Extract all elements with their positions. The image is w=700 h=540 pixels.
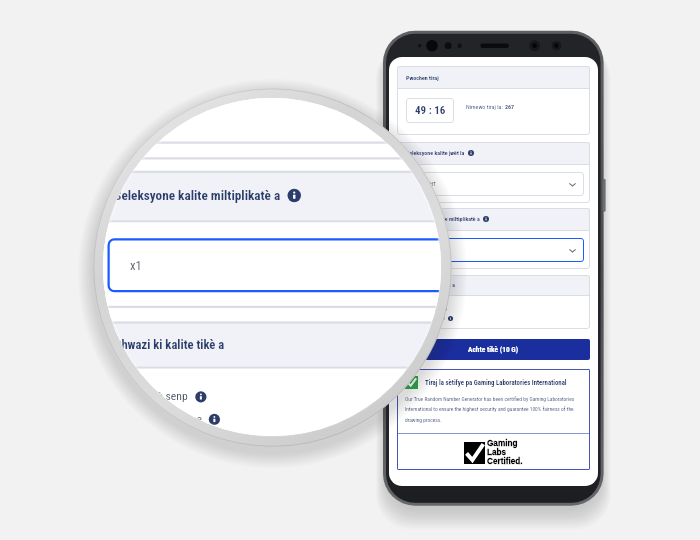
staticText: Labs [487, 448, 507, 457]
other: Info [448, 316, 453, 321]
other: Info [483, 216, 489, 222]
staticText: STRAIGHT [413, 181, 437, 188]
other: Info [287, 189, 301, 202]
staticText: x1 [130, 258, 143, 274]
staticText: 49 : 16 [415, 104, 446, 117]
staticText: Seleksyone kalite jwèt la [406, 150, 465, 157]
button[interactable]: STRAIGHT [403, 172, 584, 196]
staticText: STRAIGHT [130, 110, 184, 126]
other: Info [442, 306, 447, 311]
staticText: Tiraj la sètifye pa Gaming Laboratories … [425, 379, 567, 387]
staticText: Gaming [487, 439, 518, 448]
staticText: Chwazi ki kalite tikè a [114, 337, 225, 353]
staticText: Chwazi ki kalite tikè a [406, 282, 455, 289]
staticText: Tikè senp [143, 389, 188, 402]
staticText: Tikè konbine [419, 315, 445, 321]
staticText: Certified. [487, 457, 523, 466]
staticText: 267 [505, 103, 515, 110]
staticText: Seleksyone kalite miltiplikatè a [406, 216, 480, 223]
button[interactable]: Tikè konbine [143, 411, 220, 425]
other: Info [209, 414, 220, 425]
staticText: Tikè senp [419, 305, 439, 311]
staticText: Pwochen tiraj [406, 74, 439, 81]
staticText: Our True Random Number Generator has bee… [405, 396, 582, 424]
staticText: Seleksyone kalite miltiplikatè a [114, 189, 281, 205]
button[interactable]: Achte tikè (10 G) [397, 339, 590, 360]
button[interactable]: x1 [403, 238, 584, 262]
button[interactable]: STRAIGHT [107, 98, 441, 144]
staticText: Achte tikè (10 G) [468, 345, 519, 354]
other: Info [195, 391, 207, 403]
other: Info [468, 150, 474, 156]
staticText: Tikè konbine [143, 411, 202, 425]
staticText: Nimewo tiraj la: [466, 103, 505, 110]
button[interactable]: Tikè senp [143, 389, 206, 402]
button[interactable]: Tikè senp [419, 305, 447, 311]
button[interactable]: Tikè konbine [419, 315, 453, 321]
button[interactable]: x1 [107, 238, 441, 292]
